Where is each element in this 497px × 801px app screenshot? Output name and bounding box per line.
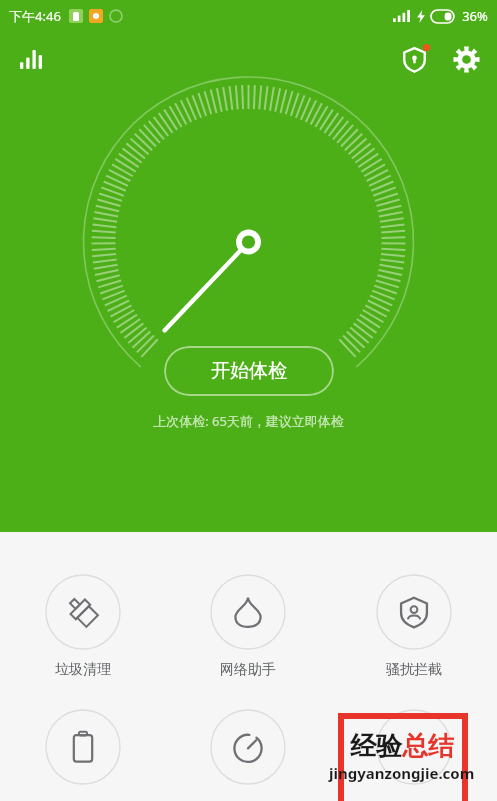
button[interactable]: Statistics bbox=[6, 34, 56, 84]
button[interactable]: 网络助手 bbox=[165, 574, 331, 679]
button[interactable]: Speed test bbox=[165, 709, 331, 785]
staticText: jingyanzongjie.com bbox=[329, 763, 475, 783]
staticText: 上次体检: 65天前，建议立即体检 bbox=[153, 412, 344, 430]
button[interactable]: 垃圾清理 bbox=[0, 574, 165, 679]
staticText: 开始体检 bbox=[211, 359, 287, 383]
staticText: 垃圾清理 bbox=[55, 661, 111, 679]
staticText: 36% bbox=[462, 7, 488, 25]
staticText: 总结 bbox=[402, 730, 454, 763]
staticText: 骚扰拦截 bbox=[386, 661, 442, 679]
staticText: 下午4:46 bbox=[9, 7, 61, 25]
staticText: 网络助手 bbox=[220, 661, 276, 679]
button[interactable]: Security bbox=[389, 34, 439, 84]
button[interactable]: 骚扰拦截 bbox=[331, 574, 497, 679]
button[interactable]: Settings bbox=[441, 34, 491, 84]
button[interactable]: More bbox=[331, 709, 497, 785]
button[interactable]: 开始体检 bbox=[164, 346, 334, 396]
staticText: 经验 bbox=[350, 730, 402, 763]
button[interactable]: Battery bbox=[0, 709, 165, 785]
